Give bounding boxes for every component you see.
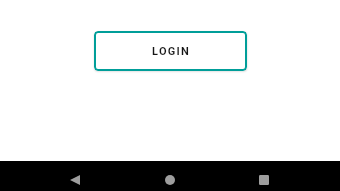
button[interactable]: LOGIN [94,31,247,71]
button[interactable]: Home [150,161,190,191]
staticText: LOGIN [152,45,190,58]
button[interactable]: Recent apps [244,161,284,191]
button[interactable]: Back [55,161,95,191]
